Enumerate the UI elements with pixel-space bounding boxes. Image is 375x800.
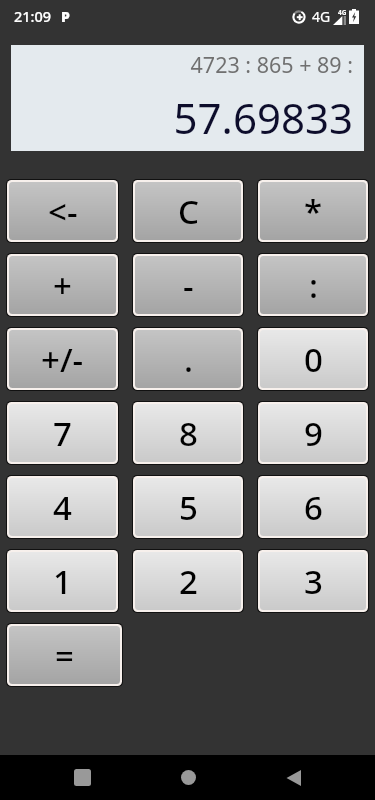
staticText: C (178, 189, 199, 234)
staticText: 8 (179, 411, 198, 456)
button[interactable]: Back (269, 755, 317, 800)
button[interactable]: 3 (260, 552, 366, 610)
staticText: 57.69833 (22, 89, 353, 146)
button[interactable]: Recents (58, 755, 106, 800)
button[interactable]: . (135, 330, 241, 388)
staticText: 3 (304, 559, 323, 604)
staticText: +/- (41, 337, 84, 382)
button[interactable]: 8 (135, 404, 241, 462)
button[interactable]: <- (9, 182, 116, 240)
staticText: P (61, 7, 70, 26)
staticText: 0 (304, 337, 323, 382)
button[interactable]: + (9, 256, 116, 314)
staticText: * (304, 189, 323, 234)
button[interactable]: 7 (9, 404, 116, 462)
button[interactable]: * (260, 182, 366, 240)
staticText: 4723 : 865 + 89 : (22, 50, 353, 79)
button[interactable]: Home (164, 755, 212, 800)
button[interactable]: - (135, 256, 241, 314)
button[interactable]: 9 (260, 404, 366, 462)
button[interactable]: 1 (9, 552, 116, 610)
button[interactable]: 2 (135, 552, 241, 610)
staticText: + (53, 263, 72, 308)
staticText: = (55, 633, 74, 678)
staticText: 2 (179, 559, 198, 604)
button[interactable]: 0 (260, 330, 366, 388)
staticText: 9 (304, 411, 323, 456)
staticText: <- (48, 189, 78, 234)
button[interactable]: = (9, 626, 120, 684)
staticText: 4G (338, 8, 347, 17)
staticText: 21:09 (14, 6, 52, 26)
button[interactable]: 6 (260, 478, 366, 536)
button[interactable]: : (260, 256, 366, 314)
staticText: 6 (304, 485, 323, 530)
staticText: 5 (179, 485, 198, 530)
staticText: 4G (312, 7, 331, 26)
staticText: . (184, 337, 193, 382)
staticText: 7 (53, 411, 72, 456)
staticText: 1 (53, 559, 72, 604)
button[interactable]: 4 (9, 478, 116, 536)
staticText: 4 (53, 485, 72, 530)
staticText: : (309, 263, 318, 308)
button[interactable]: +/- (9, 330, 116, 388)
staticText: - (183, 263, 194, 308)
button[interactable]: C (135, 182, 241, 240)
button[interactable]: 5 (135, 478, 241, 536)
